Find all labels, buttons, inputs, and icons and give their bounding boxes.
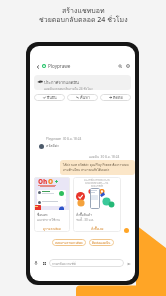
button[interactable]: Settings: [124, 62, 132, 70]
button[interactable]: Send: [124, 259, 133, 268]
staticText: แนะนำฟีเจอร์ใหม่ของระบบ: [84, 178, 110, 181]
staticText: สร้างแชทบอท: [62, 5, 105, 16]
staticText: ยืนยัน: [47, 95, 57, 101]
button[interactable]: Scroll down: [124, 228, 129, 233]
staticText: Ployprawe: [48, 63, 71, 69]
staticText: สั่งซื้อสินค้า: [76, 212, 93, 217]
staticText: ติดต่อแอดมิน: [92, 240, 111, 245]
button[interactable]: ยืนยัน: [34, 94, 65, 101]
staticText: กรอกข้อความที่นี่: [52, 261, 76, 266]
staticText: ช่วยตอบกลับตลอด 24 ชั่วโมง: [39, 14, 128, 25]
button[interactable]: แนะนำฟีเจอร์ใหม่ของระบบ: [73, 177, 121, 232]
staticText: ดูรายละเอียด: [43, 226, 62, 231]
staticText: สั่งซื้อเลย: [91, 226, 104, 231]
staticText: O: [99, 186, 105, 196]
staticText: วันนี้ - 30 ม.ค.: [76, 218, 95, 223]
button[interactable]: Back: [33, 62, 42, 71]
staticText: แอดมินจะตอบกลับภายใน 24 ชั่วโมง: [44, 86, 93, 90]
staticText: O: [48, 177, 54, 186]
staticText: ตอบแชทอัตโนมัติ 24 ชม.: [85, 181, 109, 184]
staticText: ชื่อบอท: [37, 212, 48, 217]
staticText: แอดมิน 30 มิ.ย. 18:24: [89, 154, 120, 159]
staticText: ค้นหา: [80, 95, 90, 101]
button[interactable]: ติดต่อ: [100, 94, 131, 101]
staticText: ประกาศจากแอดมิน: [44, 79, 79, 86]
staticText: สอบถามรายละเอียด: [55, 240, 83, 245]
staticText: ได้ค่ะ บอท สวัสดีค่ะ คุณ Ploy Prawe ต้อง…: [63, 162, 132, 172]
staticText: แนะนำการใช้งาน: [37, 218, 61, 223]
button[interactable]: More options: [40, 259, 48, 267]
staticText: ทดลองใช้ฟรี: [91, 184, 103, 187]
button[interactable]: ติดต่อแอดมิน: [89, 239, 114, 246]
staticText: Oh: [88, 186, 99, 196]
staticText: Ployprawe 30 มิ.ย. 18:24: [46, 136, 82, 141]
staticText: สวัสดีค่ะ: [46, 143, 60, 149]
button[interactable]: Oh: [34, 177, 70, 232]
button[interactable]: ค้นหา: [67, 94, 98, 101]
button[interactable]: Voice message: [32, 259, 40, 267]
staticText: ติดต่อ: [113, 95, 123, 101]
button[interactable]: สอบถามรายละเอียด: [52, 239, 86, 246]
button[interactable]: กรอกข้อความที่นี่: [49, 259, 124, 267]
button[interactable]: ประกาศจากแอดมิน: [34, 75, 131, 90]
staticText: Oh: [38, 177, 48, 186]
button[interactable]: Search: [116, 62, 124, 70]
